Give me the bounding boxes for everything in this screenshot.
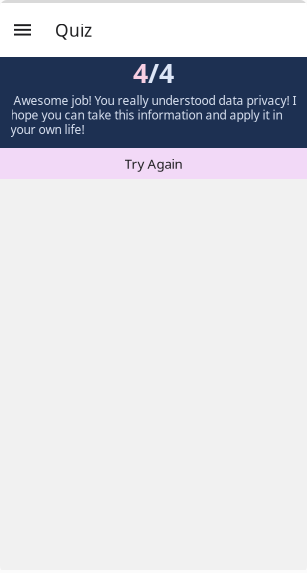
button[interactable]: Try Again — [0, 148, 307, 179]
staticText: Try Again — [124, 155, 182, 172]
staticText: Quiz — [55, 18, 92, 41]
button[interactable]: Menu — [0, 3, 41, 57]
staticText: Awesome job! You really understood data … — [10, 92, 296, 137]
staticText: 4 — [133, 55, 148, 90]
staticText: /4 — [148, 55, 174, 90]
